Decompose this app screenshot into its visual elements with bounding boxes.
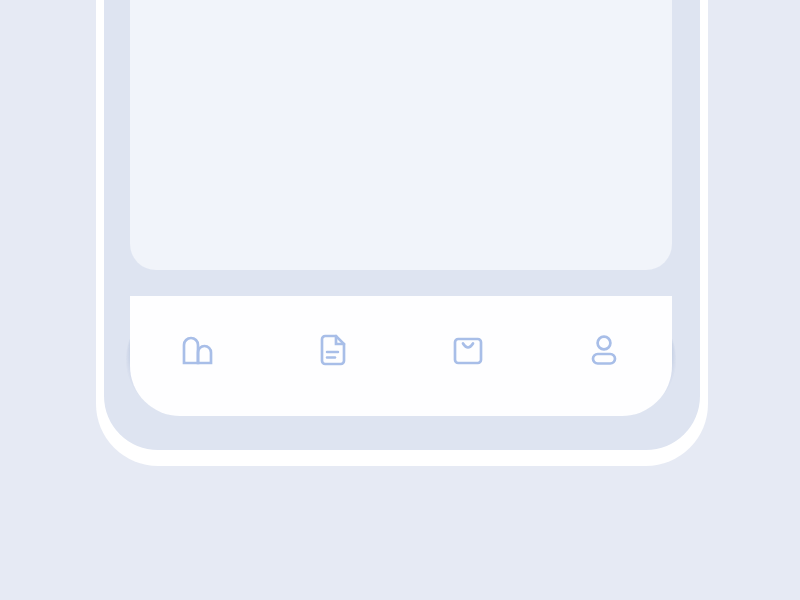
button[interactable]: Shop bbox=[130, 296, 265, 416]
button[interactable]: Profile bbox=[536, 296, 672, 416]
button[interactable]: Bag bbox=[400, 296, 536, 416]
button[interactable]: Orders bbox=[265, 296, 400, 416]
